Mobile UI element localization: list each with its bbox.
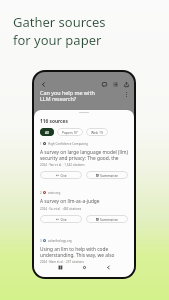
staticText: High Confidence Computing xyxy=(48,142,88,146)
button[interactable]: Cite xyxy=(40,215,82,223)
staticText: Gather sources xyxy=(13,13,106,31)
staticText: arxiv.org xyxy=(48,191,61,195)
button[interactable]: Share xyxy=(121,79,131,89)
staticText: A survey on large language model (llm) s… xyxy=(40,149,128,161)
staticText: aclanthology.org xyxy=(48,239,72,243)
button[interactable]: Summarize xyxy=(86,171,128,179)
button[interactable]: Papers 97 xyxy=(57,128,83,136)
button[interactable]: Cite xyxy=(40,171,82,179)
button[interactable]: 2 xyxy=(34,190,134,223)
staticText: All xyxy=(45,130,49,135)
staticText: for your paper xyxy=(13,31,102,49)
staticText: 2 xyxy=(40,191,42,195)
button[interactable]: Summarize xyxy=(86,215,128,223)
button[interactable]: Back xyxy=(104,263,112,271)
staticText: A survey on llm-as-a-judge xyxy=(40,198,100,205)
button[interactable]: More options xyxy=(122,90,130,98)
staticText: 1 xyxy=(40,142,42,146)
staticText: Web 19 xyxy=(91,130,103,135)
staticText: Can you help me with LLM research? xyxy=(40,89,95,103)
button[interactable]: Web 19 xyxy=(86,128,108,136)
staticText: 116 sources xyxy=(40,118,68,125)
staticText: Summarize xyxy=(100,217,118,222)
staticText: 2024 · Gu et al. · 482 citations xyxy=(40,207,82,211)
staticText: Summarize xyxy=(100,173,118,178)
button[interactable]: 1 xyxy=(34,141,134,179)
staticText: 2024 · Nam et al. · 237 citations xyxy=(40,260,84,264)
staticText: 3 xyxy=(40,239,42,243)
button[interactable]: Recents xyxy=(56,263,64,271)
staticText: Papers 97 xyxy=(62,130,78,135)
button[interactable]: 3 xyxy=(34,238,134,264)
button[interactable]: All xyxy=(40,128,54,136)
button[interactable]: Sort xyxy=(110,79,120,89)
button[interactable]: Back xyxy=(38,79,48,89)
staticText: Cite xyxy=(60,173,67,178)
button[interactable]: Home xyxy=(80,263,88,271)
staticText: Using an llm to help with code understan… xyxy=(40,246,128,258)
button[interactable]: Comments xyxy=(99,79,109,89)
staticText: 2024 · Yan et al. · 1,542 citations xyxy=(40,163,85,167)
staticText: Cite xyxy=(60,217,67,222)
